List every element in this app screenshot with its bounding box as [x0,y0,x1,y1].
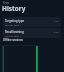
button[interactable]: Targeting type [3,17,61,27]
staticText: 19 Nov 2023 [5,34,19,37]
staticText: Recall training [5,30,24,34]
staticText: History [2,4,26,13]
other: Start a session [0,0,64,72]
staticText: Offline sessions [3,38,23,42]
staticText: 7 m [54,19,59,22]
staticText: Keep [3,1,10,5]
button[interactable]: Recall training [3,28,61,38]
staticText: Targeting type [5,19,24,23]
staticText: 20 Nov 2023 [5,23,19,26]
staticText: 5 m [54,30,59,33]
